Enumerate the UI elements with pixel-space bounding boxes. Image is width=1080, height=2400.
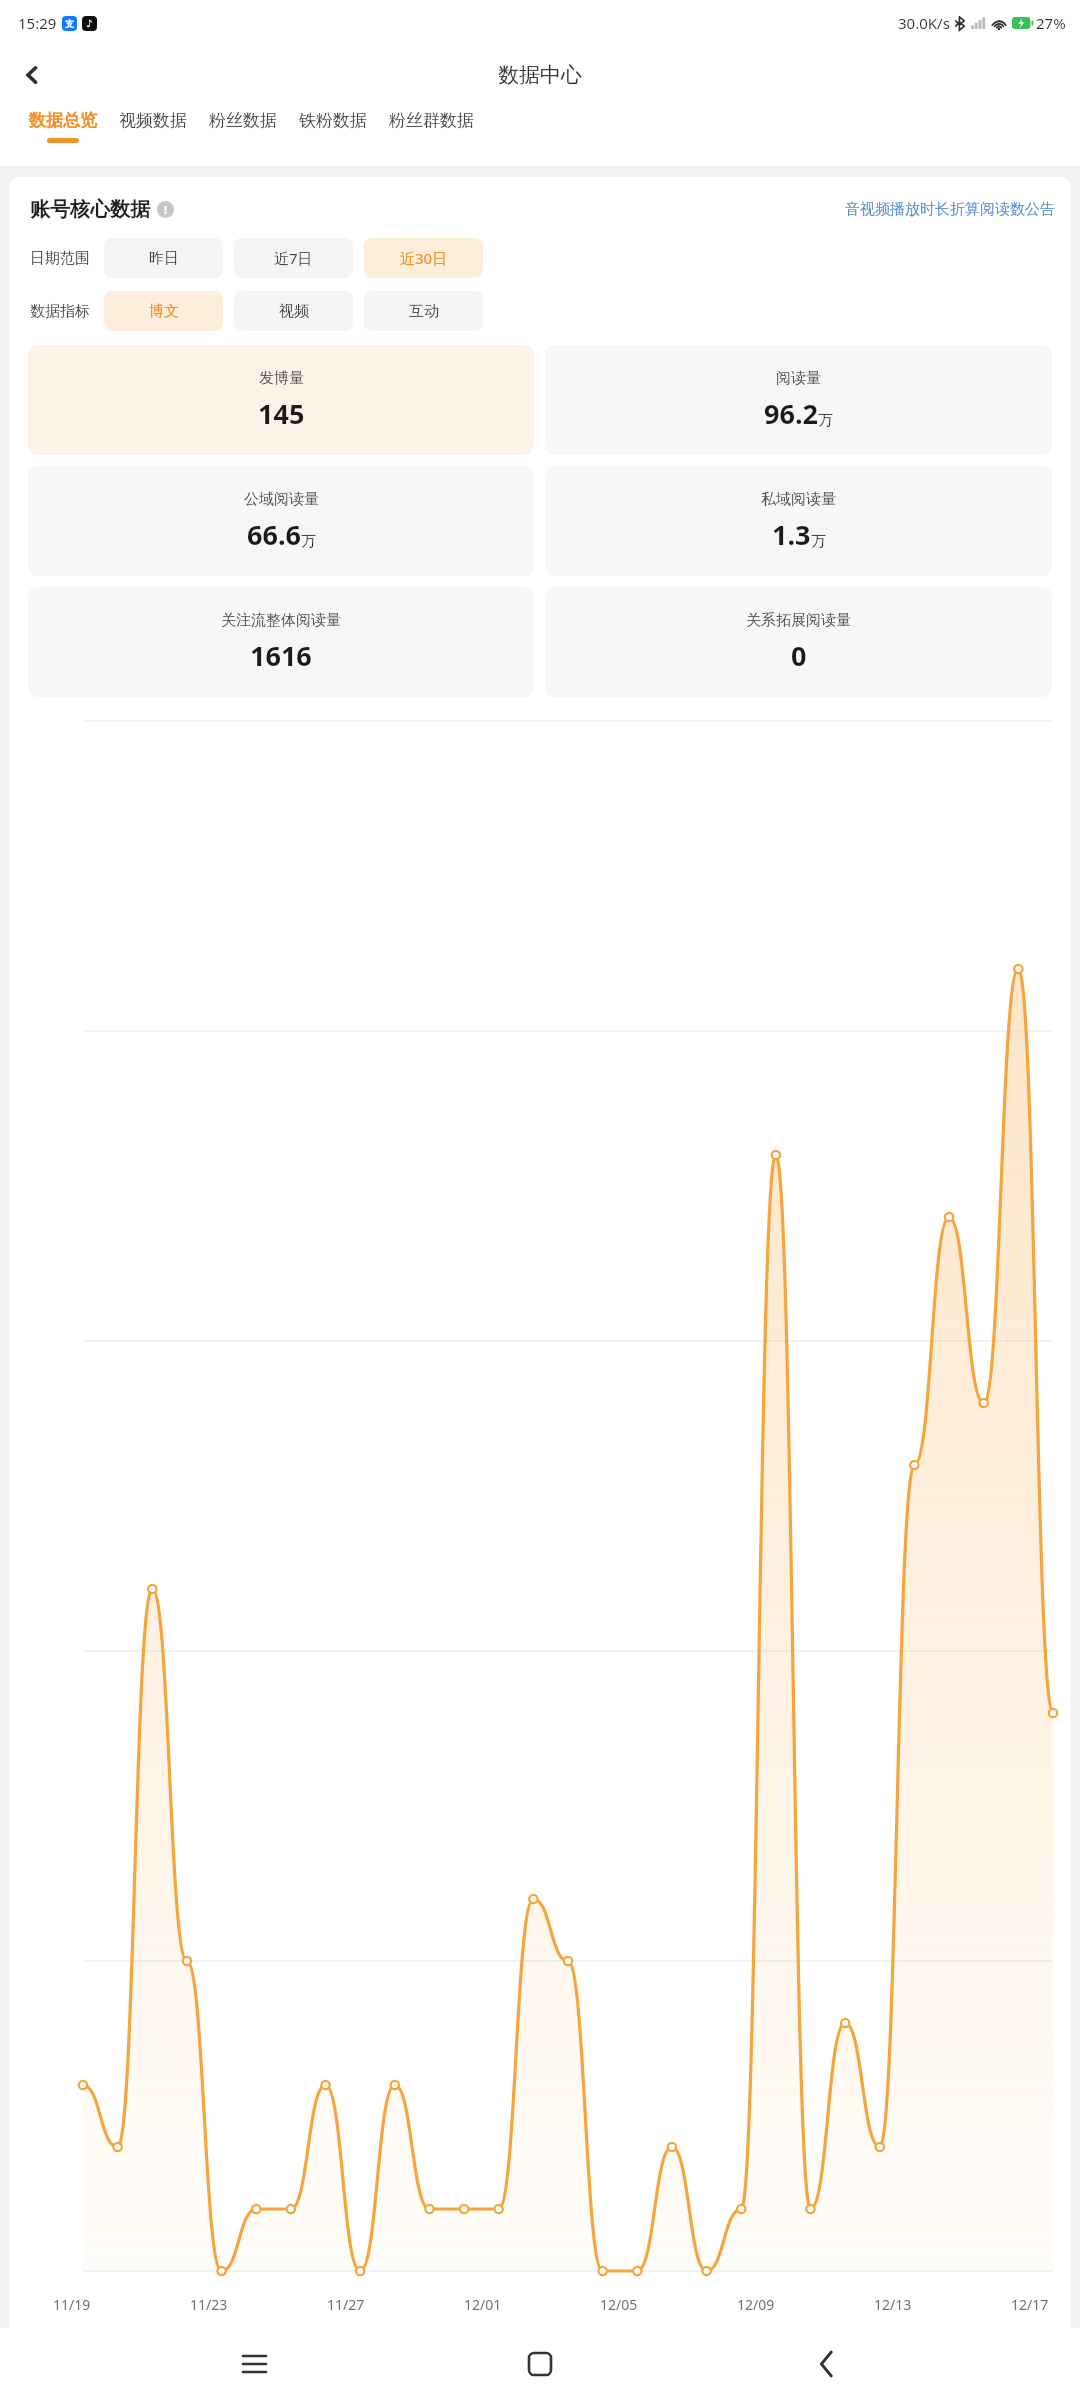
button[interactable]: 粉丝数据: [198, 104, 288, 144]
staticText: 11/23: [190, 2295, 228, 2314]
button[interactable]: Info: [157, 201, 174, 218]
staticText: 27%: [1036, 13, 1066, 33]
staticText: 铁粉数据: [299, 110, 367, 131]
button[interactable]: 互动: [364, 291, 483, 331]
staticText: 1616: [250, 637, 312, 674]
staticText: 粉丝数据: [209, 110, 277, 131]
staticText: 11/27: [327, 2295, 365, 2314]
staticText: 视频数据: [119, 110, 187, 131]
staticText: 账号核心数据: [30, 197, 150, 222]
button[interactable]: 近30日: [364, 238, 483, 278]
staticText: 12/01: [464, 2295, 502, 2314]
staticText: 12/05: [600, 2295, 638, 2314]
button[interactable]: 关系拓展阅读量: [545, 587, 1052, 697]
button[interactable]: 阅读量: [545, 345, 1052, 455]
staticText: 万: [811, 532, 826, 551]
staticText: 0: [791, 637, 807, 674]
staticText: 万: [301, 532, 316, 551]
button[interactable]: 发博量: [28, 345, 534, 455]
button[interactable]: 粉丝群数据: [378, 104, 485, 144]
staticText: 视频: [279, 302, 309, 321]
staticText: 博文: [149, 302, 179, 321]
button[interactable]: 铁粉数据: [288, 104, 378, 144]
staticText: 12/13: [874, 2295, 912, 2314]
button[interactable]: 关注流整体阅读量: [28, 587, 534, 697]
staticText: 近7日: [274, 248, 313, 268]
staticText: 数据总览: [29, 110, 97, 131]
button[interactable]: 视频: [234, 291, 353, 331]
staticText: 数据指标: [30, 302, 90, 321]
button[interactable]: Back: [794, 2332, 858, 2396]
staticText: 12/09: [737, 2295, 775, 2314]
staticText: 145: [258, 395, 305, 432]
button[interactable]: 数据总览: [18, 104, 108, 149]
staticText: 日期范围: [30, 249, 90, 268]
button[interactable]: 私域阅读量: [545, 466, 1052, 576]
button[interactable]: 公域阅读量: [28, 466, 534, 576]
staticText: 15:29: [18, 13, 57, 33]
button[interactable]: 博文: [104, 291, 223, 331]
staticText: 近30日: [400, 248, 448, 268]
button[interactable]: Back: [8, 51, 56, 99]
staticText: 11/19: [53, 2295, 91, 2314]
staticText: 支: [65, 18, 74, 29]
button[interactable]: 音视频播放时长折算阅读数公告: [845, 200, 1055, 219]
staticText: 关系拓展阅读量: [746, 611, 851, 630]
staticText: 数据中心: [498, 62, 582, 88]
staticText: !: [164, 202, 168, 217]
button[interactable]: 昨日: [104, 238, 223, 278]
staticText: 1.3: [772, 516, 811, 553]
staticText: 30.0K/s: [898, 13, 950, 33]
staticText: 粉丝群数据: [389, 110, 474, 131]
staticText: 公域阅读量: [244, 490, 319, 509]
staticText: 96.2: [764, 395, 818, 432]
staticText: 昨日: [149, 249, 179, 268]
staticText: 发博量: [259, 369, 304, 388]
button[interactable]: 近7日: [234, 238, 353, 278]
staticText: 阅读量: [776, 369, 821, 388]
staticText: 66.6: [247, 516, 301, 553]
staticText: 互动: [409, 302, 439, 321]
staticText: 万: [818, 411, 833, 430]
staticText: 关注流整体阅读量: [221, 611, 341, 630]
button[interactable]: Home: [508, 2332, 572, 2396]
button[interactable]: 视频数据: [108, 104, 198, 144]
staticText: ♪: [86, 18, 93, 30]
button[interactable]: Recents: [222, 2332, 286, 2396]
staticText: 12/17: [1011, 2295, 1049, 2314]
staticText: 私域阅读量: [761, 490, 836, 509]
